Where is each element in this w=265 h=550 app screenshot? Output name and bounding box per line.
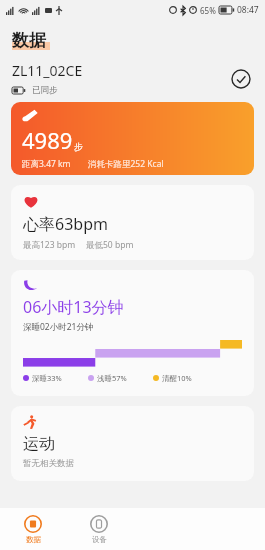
button[interactable]: 设备 bbox=[66, 511, 132, 548]
staticText: 深睡02小时21分钟 bbox=[23, 321, 94, 333]
staticText: 浅睡57% bbox=[97, 373, 127, 383]
staticText: 消耗卡路里252 Kcal bbox=[88, 158, 164, 170]
staticText: 步 bbox=[74, 141, 83, 152]
staticText: 清醒10% bbox=[162, 373, 192, 383]
button[interactable]: 心率63bpm bbox=[11, 185, 254, 260]
staticText: 暂无相关数据 bbox=[23, 458, 74, 469]
button[interactable]: 4989 bbox=[11, 102, 254, 175]
staticText: 距离3.47 km bbox=[22, 158, 71, 170]
staticText: 已同步 bbox=[32, 85, 58, 96]
staticText: 设备 bbox=[92, 535, 107, 544]
staticText: 深睡33% bbox=[32, 373, 62, 383]
staticText: 心率63bpm bbox=[23, 213, 108, 235]
button[interactable]: 06小时13分钟 bbox=[11, 270, 254, 396]
staticText: 最低50 bpm bbox=[86, 239, 134, 251]
staticText: 最高123 bpm bbox=[23, 239, 76, 251]
staticText: 65% bbox=[200, 5, 216, 16]
button[interactable]: Sync status bbox=[229, 67, 253, 91]
button[interactable]: 运动 bbox=[11, 406, 254, 481]
staticText: 数据 bbox=[26, 535, 41, 544]
staticText: ZL11_02CE bbox=[12, 61, 83, 80]
staticText: 运动 bbox=[23, 434, 55, 454]
button[interactable]: 数据 bbox=[0, 511, 66, 548]
staticText: 06小时13分钟 bbox=[23, 296, 124, 318]
staticText: 数据 bbox=[12, 30, 46, 51]
staticText: 4989 bbox=[22, 125, 73, 155]
staticText: 08:47 bbox=[237, 4, 259, 16]
